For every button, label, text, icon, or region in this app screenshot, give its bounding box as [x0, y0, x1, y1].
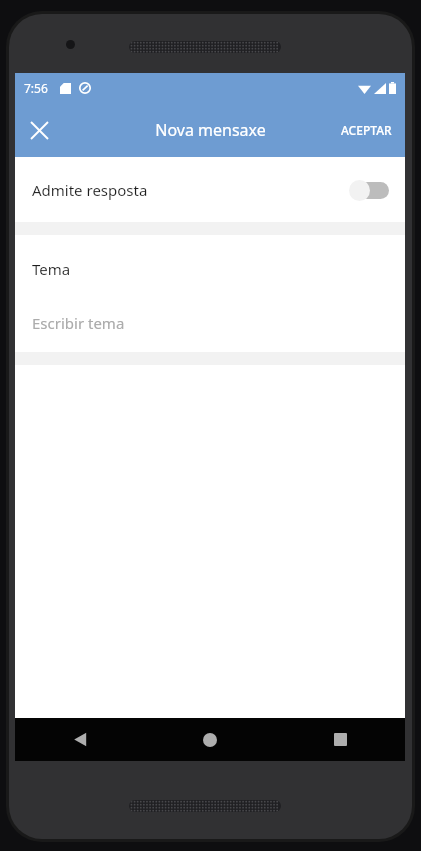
staticText: 7:56	[24, 80, 48, 96]
staticText: Tema	[32, 259, 71, 279]
button[interactable]: Recentes	[275, 718, 405, 761]
button[interactable]: Atrás	[15, 718, 145, 761]
button[interactable]: Admite resposta	[15, 157, 405, 222]
button[interactable]: Pechar	[15, 106, 63, 154]
button[interactable]: ACEPTAR	[328, 103, 405, 157]
button[interactable]: Tema	[15, 235, 405, 352]
staticText: Escribir tema	[32, 313, 125, 333]
button[interactable]: Inicio	[145, 718, 275, 761]
staticText: Admite resposta	[32, 180, 148, 200]
staticText: Nova mensaxe	[155, 119, 266, 141]
staticText: ACEPTAR	[341, 122, 392, 138]
